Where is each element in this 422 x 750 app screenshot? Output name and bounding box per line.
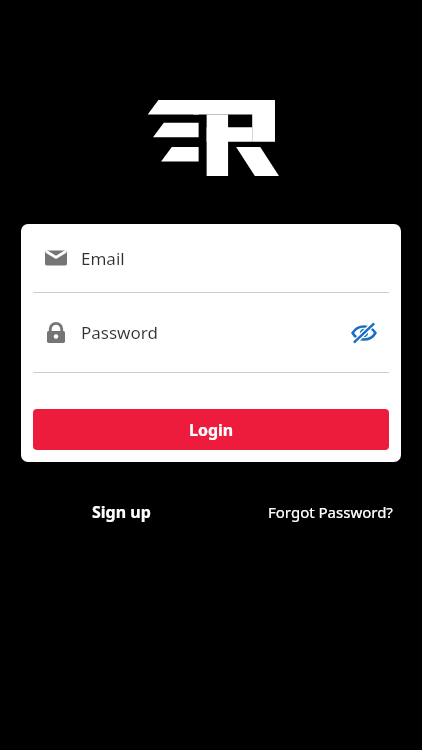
staticText: Forgot Password? <box>268 502 393 522</box>
button[interactable]: Sign up <box>88 497 155 527</box>
other: Email <box>45 247 67 269</box>
button[interactable]: Password <box>21 293 401 372</box>
staticText: Email <box>81 247 125 270</box>
staticText: Sign up <box>92 501 151 523</box>
button[interactable]: Forgot Password? <box>264 498 397 526</box>
other: Password <box>45 321 67 345</box>
staticText: Password <box>81 321 158 344</box>
staticText: Login <box>189 419 234 441</box>
button[interactable]: Login <box>33 409 389 450</box>
button[interactable]: Show password <box>347 316 381 350</box>
button[interactable]: Email <box>21 224 401 292</box>
